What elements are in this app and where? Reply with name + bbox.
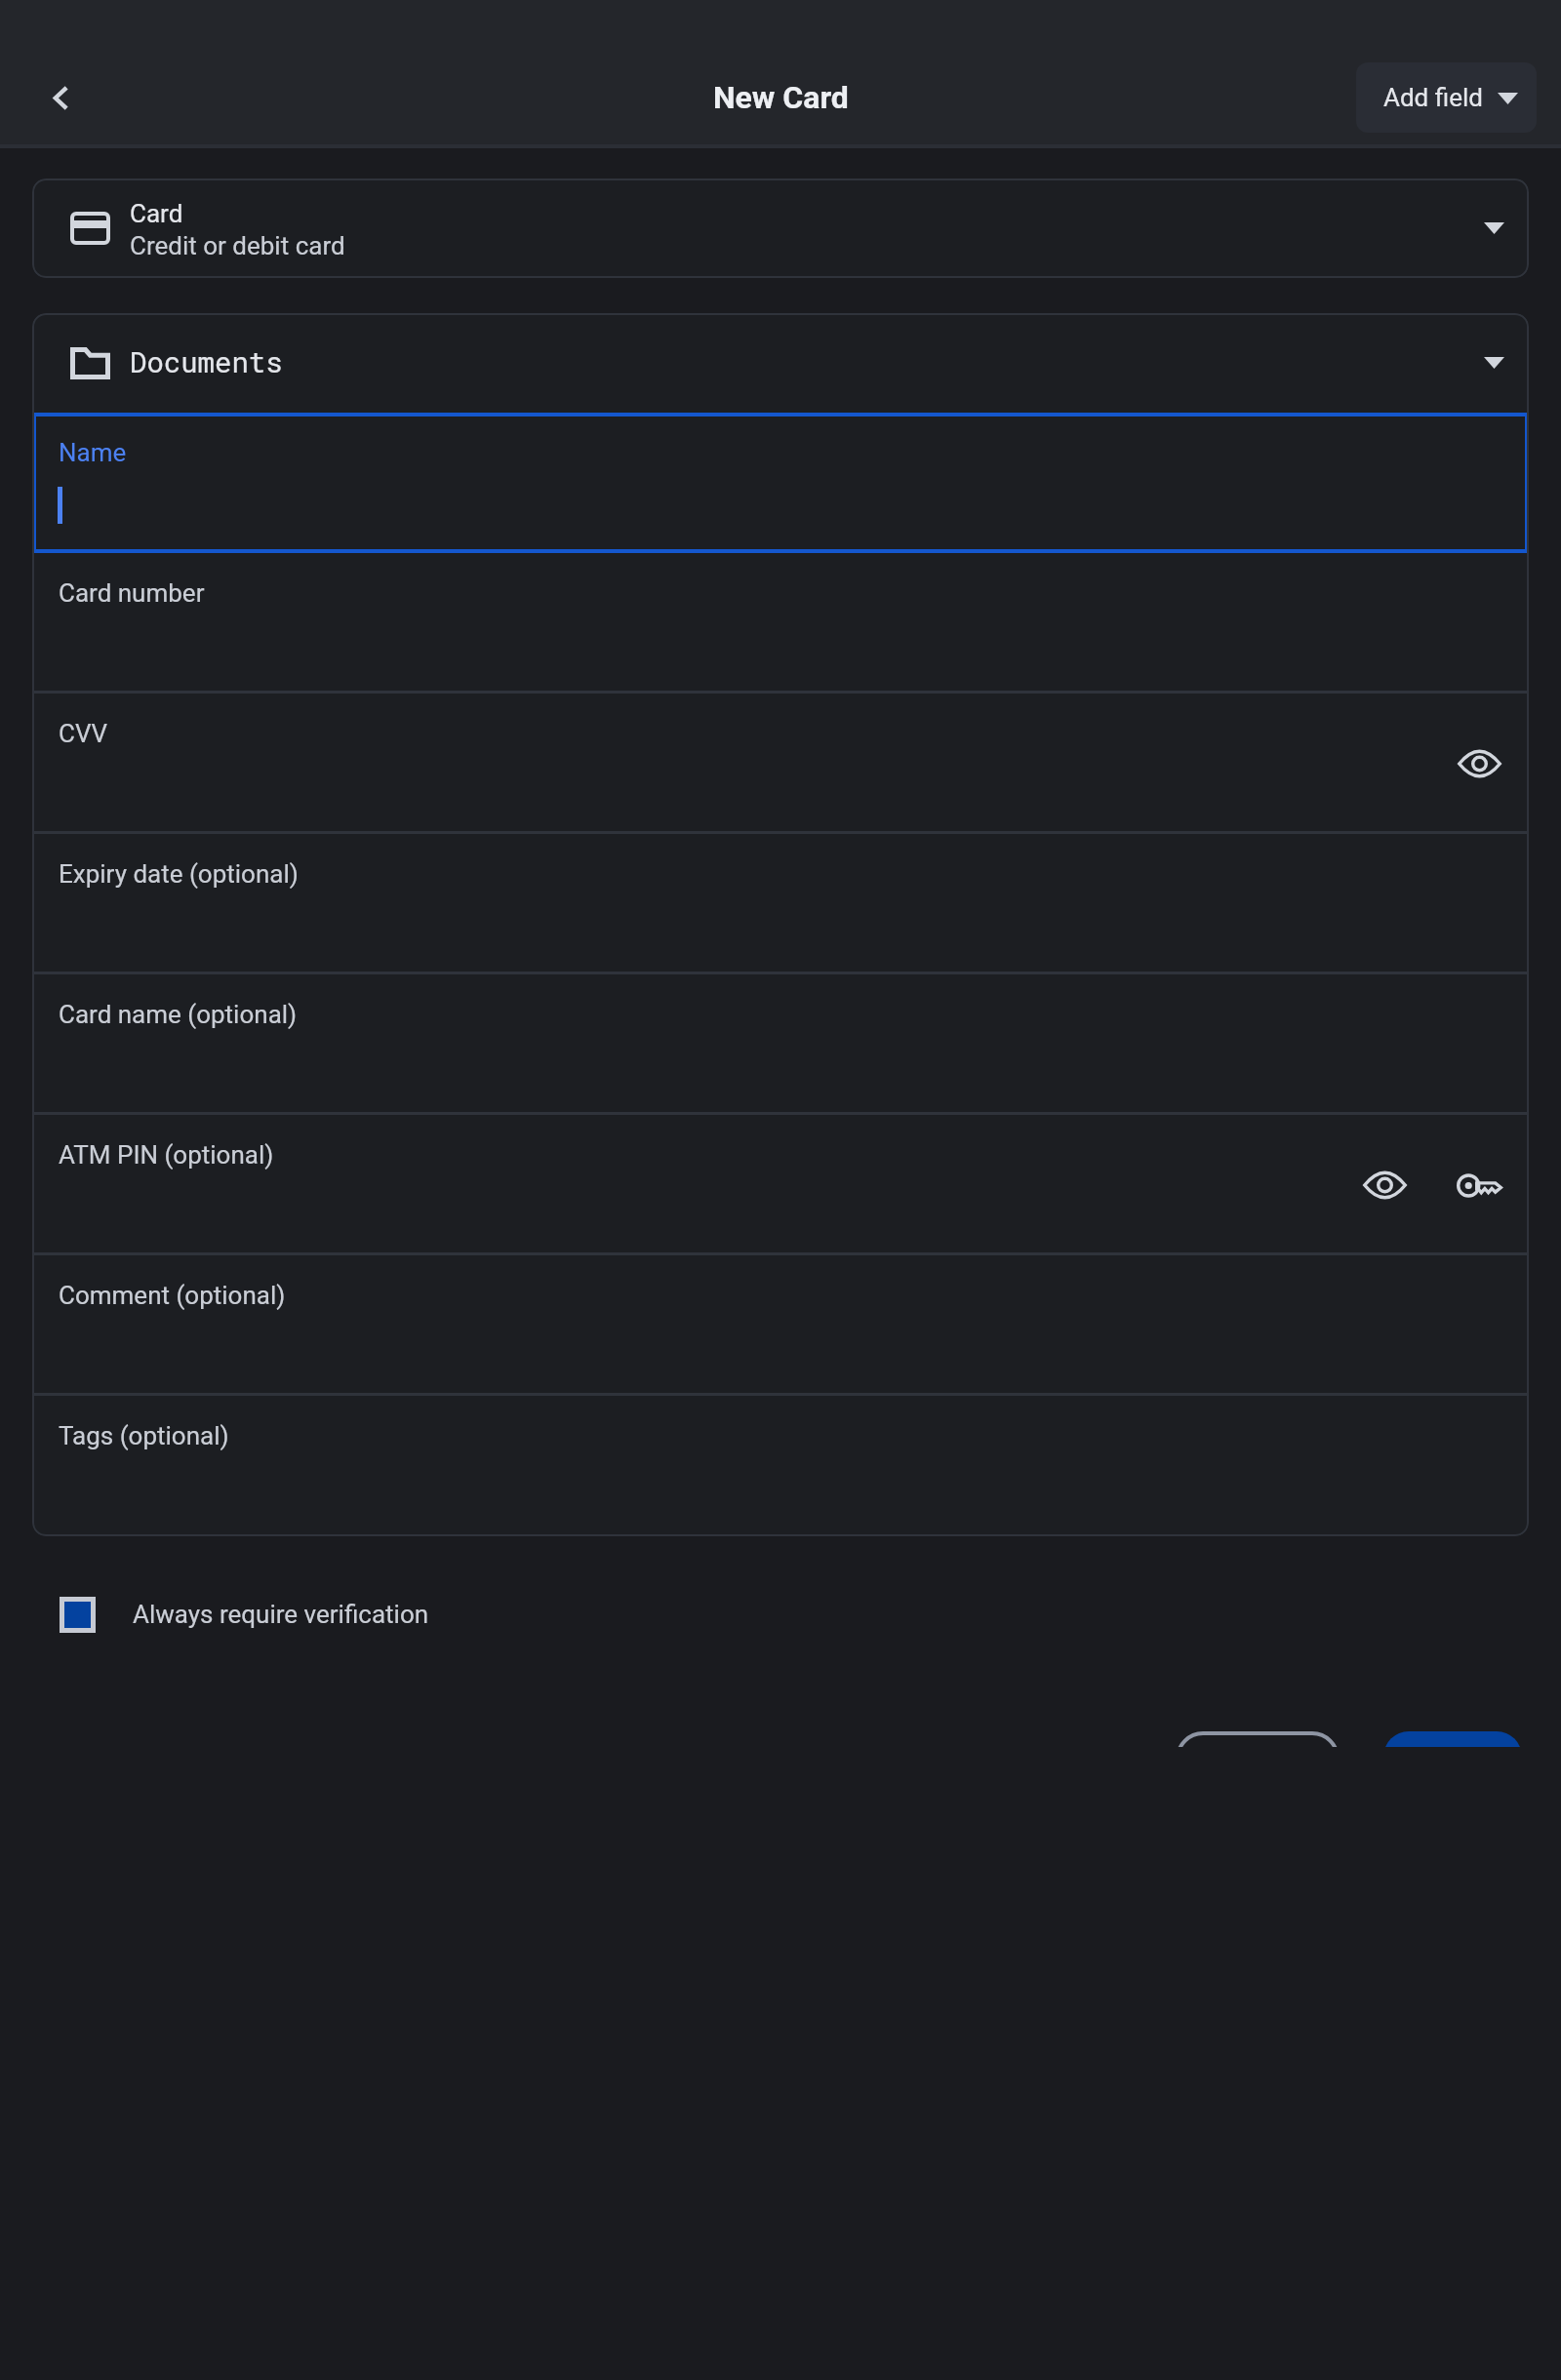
staticText: Always require verification	[133, 1600, 429, 1630]
staticText: Expiry date (optional)	[59, 859, 299, 890]
staticText: Tags (optional)	[59, 1421, 229, 1451]
staticText: Comment (optional)	[59, 1281, 286, 1311]
staticText: Card number	[59, 578, 205, 609]
button[interactable]: Always require verification	[60, 1597, 429, 1633]
button[interactable]: Save	[1383, 1731, 1522, 1747]
button[interactable]: Documents	[32, 313, 1529, 413]
button[interactable]: Generate password	[1449, 1155, 1509, 1215]
button[interactable]: CVV	[32, 694, 1529, 834]
staticText: Documents	[130, 346, 283, 379]
button[interactable]: Card name (optional)	[32, 974, 1529, 1115]
button[interactable]: Add field	[1356, 62, 1537, 133]
staticText: Card name (optional)	[59, 1000, 298, 1030]
button[interactable]: Tags (optional)	[32, 1396, 1529, 1536]
button[interactable]: Show value	[1354, 1155, 1415, 1215]
staticText: CVV	[59, 719, 108, 749]
button[interactable]: Card number	[32, 553, 1529, 694]
staticText: Card	[130, 199, 183, 229]
button[interactable]: Comment (optional)	[32, 1255, 1529, 1396]
staticText: Name	[59, 438, 127, 468]
staticText: Add field	[1383, 83, 1483, 113]
staticText: Credit or debit card	[130, 231, 345, 261]
button[interactable]: ATM PIN (optional)	[32, 1115, 1529, 1255]
button[interactable]: Name	[32, 413, 1529, 553]
staticText: New Card	[713, 79, 849, 116]
button[interactable]: Expiry date (optional)	[32, 834, 1529, 974]
staticText: ATM PIN (optional)	[59, 1140, 274, 1170]
button[interactable]: Cancel	[1176, 1731, 1340, 1747]
button[interactable]: Back	[14, 51, 107, 144]
button[interactable]: Show value	[1449, 734, 1509, 794]
button[interactable]: Card	[32, 178, 1529, 278]
